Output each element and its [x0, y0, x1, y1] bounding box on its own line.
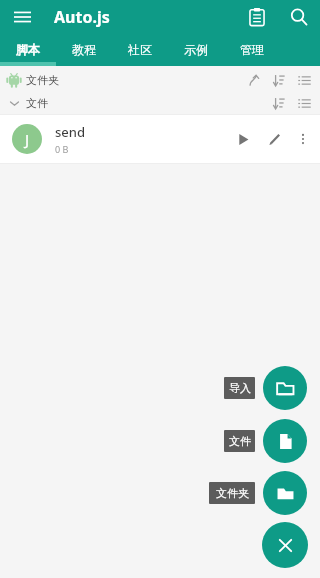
button[interactable]: View mode [293, 69, 315, 91]
staticText: 文件夹 [216, 486, 249, 500]
staticText: 社区 [128, 42, 152, 57]
button[interactable]: 社区 [112, 33, 168, 66]
staticText: 教程 [72, 42, 96, 57]
button[interactable]: 示例 [168, 33, 224, 66]
button[interactable]: New folder [263, 471, 307, 515]
button[interactable]: Logs [242, 2, 272, 32]
staticText: 文件 [26, 96, 48, 110]
button[interactable]: 脚本 [0, 33, 56, 66]
staticText: 文件 [229, 434, 251, 448]
staticText: J [25, 129, 30, 149]
button[interactable]: Search [284, 2, 314, 32]
button[interactable]: J [0, 115, 320, 163]
button[interactable]: Import [263, 366, 307, 410]
button[interactable]: Menu [8, 3, 36, 31]
staticText: Auto.js [54, 6, 110, 28]
staticText: 文件夹 [26, 73, 59, 87]
staticText: 示例 [184, 42, 208, 57]
button[interactable]: Sort [268, 92, 290, 114]
button[interactable]: 文件夹 [0, 68, 320, 91]
button[interactable]: Close menu [262, 522, 308, 568]
button[interactable]: View mode [293, 92, 315, 114]
button[interactable]: 文件 [0, 91, 320, 114]
button[interactable]: 教程 [56, 33, 112, 66]
staticText: 脚本 [16, 42, 40, 57]
button[interactable]: New file [263, 419, 307, 463]
staticText: send [55, 123, 85, 141]
staticText: 导入 [229, 381, 251, 395]
staticText: 管理 [240, 42, 264, 57]
button[interactable]: Sort [268, 69, 290, 91]
button[interactable]: 文件夹 [209, 482, 255, 504]
button[interactable]: 文件 [224, 430, 255, 452]
button[interactable]: Run [230, 126, 256, 152]
staticText: 0 B [55, 143, 69, 155]
button[interactable]: Edit [262, 126, 288, 152]
button[interactable]: More options [290, 126, 316, 152]
button[interactable]: Up [243, 69, 265, 91]
button[interactable]: 管理 [224, 33, 280, 66]
button[interactable]: 导入 [224, 377, 255, 399]
